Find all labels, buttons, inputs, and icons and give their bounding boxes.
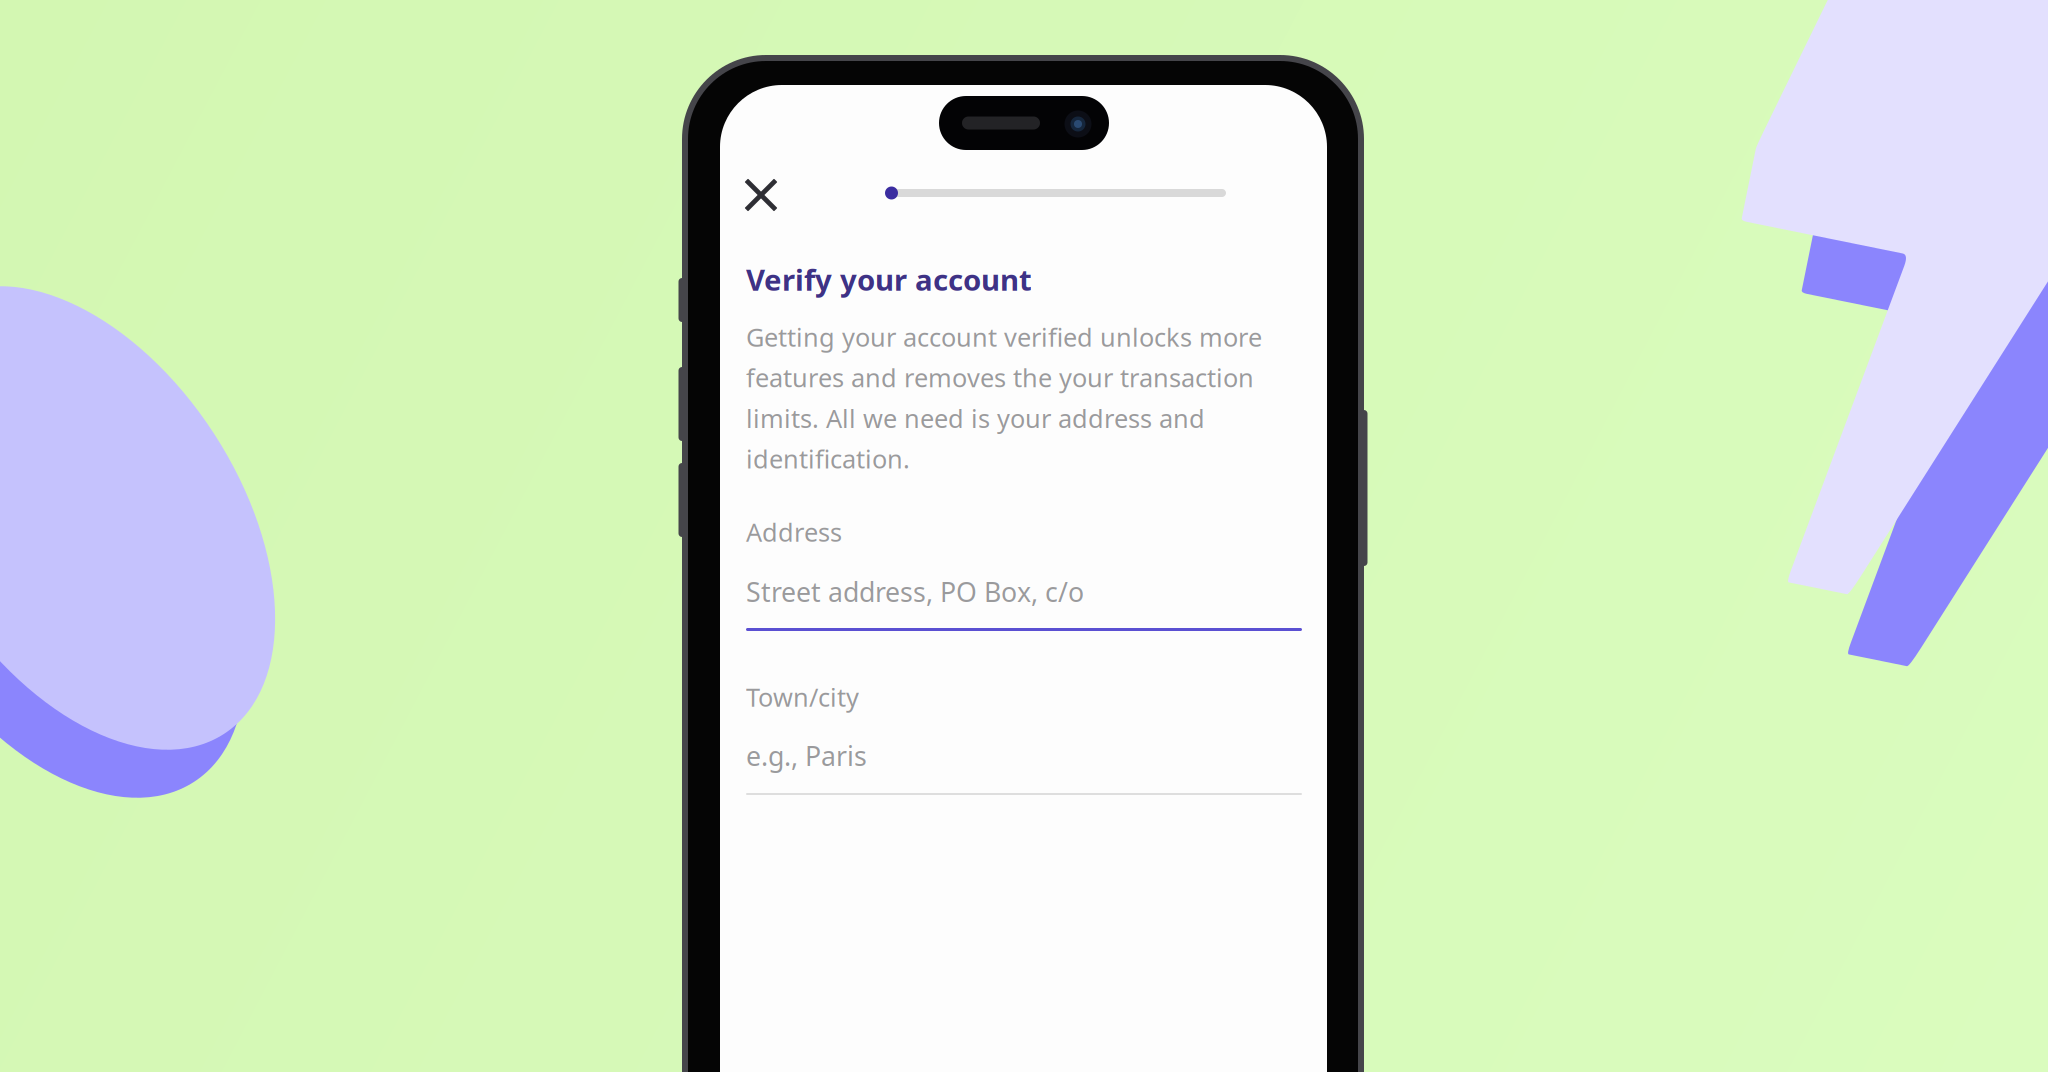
staticText: Address: [746, 515, 842, 549]
staticText: Town/city: [746, 680, 859, 714]
staticText: Getting your account verified unlocks mo…: [746, 320, 1262, 476]
button[interactable]: e.g., Paris: [746, 729, 1302, 795]
staticText: Street address, PO Box, c/o: [746, 574, 1084, 609]
button[interactable]: Close: [732, 166, 790, 224]
button[interactable]: Street address, PO Box, c/o: [746, 565, 1302, 631]
staticText: e.g., Paris: [746, 738, 867, 773]
staticText: Verify your account: [746, 260, 1032, 299]
